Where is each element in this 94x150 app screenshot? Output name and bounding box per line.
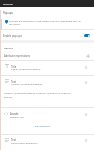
staticText: Single Family Residence… [11,142,61,145]
staticText: Title [11,65,17,69]
staticText: Parcel: {CURParcelAddress} [11,68,56,71]
button[interactable]: Title expression [0,60,94,75]
staticText: Pop-ups [3,2,13,5]
staticText: Edit expression [35,125,51,128]
staticText: Existing: Not [10,116,60,119]
button[interactable]: Edit expression [34,124,52,129]
staticText: Pop-ups are windows in Map Viewer that a… [9,19,83,26]
staticText: Options [4,46,14,49]
button[interactable]: Text expression 2 [0,135,94,150]
staticText: Pop-ups [3,11,13,14]
button[interactable]: Reorder [84,65,88,69]
button[interactable]: Text expression [0,76,94,108]
button[interactable]: Reorder [84,80,88,84]
button[interactable]: Enable pop-ups [0,30,94,41]
staticText: Arcade [10,112,19,116]
other: Add expression [86,54,90,58]
staticText: Address: {CURParcelAddress} CodeAPN: {Pa… [4,92,74,99]
button[interactable]: Attribute expressions [0,51,94,60]
button[interactable]: Reorder [84,112,88,116]
staticText: Text [11,80,16,84]
staticText: Text [11,138,16,142]
staticText: Address: {CURParcelAddress} [11,83,61,86]
button[interactable]: Arcade expression [0,108,94,135]
staticText: Attribute expressions [4,54,30,58]
button[interactable]: Reorder [84,138,88,142]
staticText: Enable pop-ups [3,34,22,38]
